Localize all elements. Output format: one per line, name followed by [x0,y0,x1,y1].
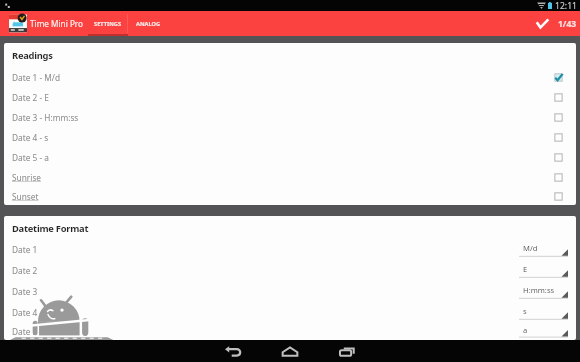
staticText: Date 4 - s [12,132,49,143]
button[interactable]: Date 1 [4,239,576,260]
button[interactable]: Home [269,340,311,362]
staticText: Sunset [12,191,39,202]
staticText: ANALOG [136,20,161,28]
staticText: H:mm:ss [523,285,555,295]
button[interactable]: Sunset [4,187,576,205]
button[interactable]: Date 2 - E [4,87,576,107]
button[interactable]: Date 3 - H:mm:ss [4,107,576,127]
staticText: 12:11 [555,0,577,11]
staticText: M/d [523,243,538,253]
staticText: Date 5 - a [12,152,49,163]
button[interactable]: Recent apps [326,340,368,362]
staticText: a [523,325,528,335]
staticText: Readings [12,49,53,62]
button[interactable]: Date 4 - s [4,127,576,147]
button[interactable]: Back [212,340,254,362]
staticText: Date 1 [12,244,38,255]
button[interactable]: Date 2 [4,260,576,281]
button[interactable]: ANALOG [128,11,168,36]
button[interactable]: SETTINGS [88,11,128,36]
staticText: Date 2 [12,265,38,276]
staticText: Date 5 [12,326,38,337]
button[interactable]: Date 4 [4,302,576,323]
button[interactable]: Date 1 - M/d [4,67,576,87]
staticText: Date 1 - M/d [12,72,60,83]
staticText: Datetime Format [12,222,89,235]
button[interactable]: Sunrise [4,167,576,187]
staticText: SETTINGS [94,20,122,28]
button[interactable]: Date 3 [4,281,576,302]
staticText: Time Mini Pro [30,18,84,29]
button[interactable]: Date 5 [4,323,576,340]
button[interactable]: More options [556,11,578,36]
staticText: 1/43 [558,18,577,30]
button[interactable]: Done [530,11,554,36]
staticText: Sunrise [12,172,42,183]
staticText: s [523,306,527,316]
staticText: Date 3 - H:mm:ss [12,112,79,123]
staticText: Date 3 [12,286,38,297]
staticText: E [523,264,528,274]
staticText: Date 4 [12,307,38,318]
button[interactable]: Date 5 - a [4,147,576,167]
staticText: Date 2 - E [12,92,49,103]
